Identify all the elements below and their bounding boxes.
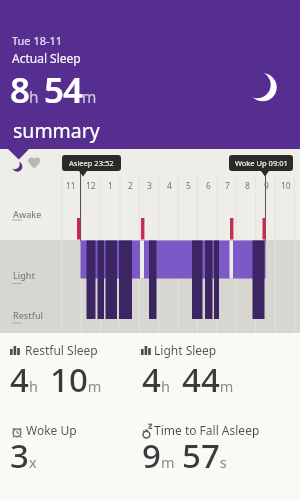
staticText: Time to Fall Asleep	[154, 422, 260, 438]
staticText: Restful	[13, 309, 43, 321]
staticText: Asleep 23:52	[69, 158, 114, 168]
button[interactable]: summary	[0, 110, 110, 148]
staticText: Light Sleep	[154, 342, 217, 358]
staticText: 4	[167, 180, 172, 192]
staticText: 3x	[10, 433, 37, 478]
staticText: 4h	[142, 357, 170, 402]
staticText: 10	[281, 180, 291, 192]
staticText: Actual Sleep	[12, 50, 81, 66]
staticText: 7	[225, 180, 230, 192]
staticText: 8	[245, 180, 250, 192]
staticText: Awake	[13, 208, 42, 220]
staticText: summary	[13, 117, 100, 144]
button[interactable]	[26, 153, 44, 171]
staticText: 54m	[44, 66, 97, 114]
staticText: 12	[86, 180, 96, 192]
staticText: 1	[108, 180, 113, 192]
staticText: 8h	[10, 66, 39, 114]
staticText: 57s	[182, 433, 227, 478]
staticText: 4h	[10, 357, 38, 402]
staticText: 10m	[50, 357, 102, 402]
staticText: 44m	[182, 357, 234, 402]
staticText: 9	[264, 180, 269, 192]
staticText: 5	[186, 180, 191, 192]
staticText: 11	[66, 180, 76, 192]
staticText: 3	[147, 180, 152, 192]
staticText: Restful Sleep	[25, 342, 98, 358]
staticText: Light	[13, 269, 35, 281]
staticText: 6	[206, 180, 211, 192]
staticText: 9m	[142, 433, 175, 478]
staticText: Woke Up	[26, 422, 77, 438]
staticText: 2	[128, 180, 133, 192]
staticText: Tue 18-11	[12, 33, 63, 48]
staticText: Woke Up 09:01	[235, 158, 288, 168]
